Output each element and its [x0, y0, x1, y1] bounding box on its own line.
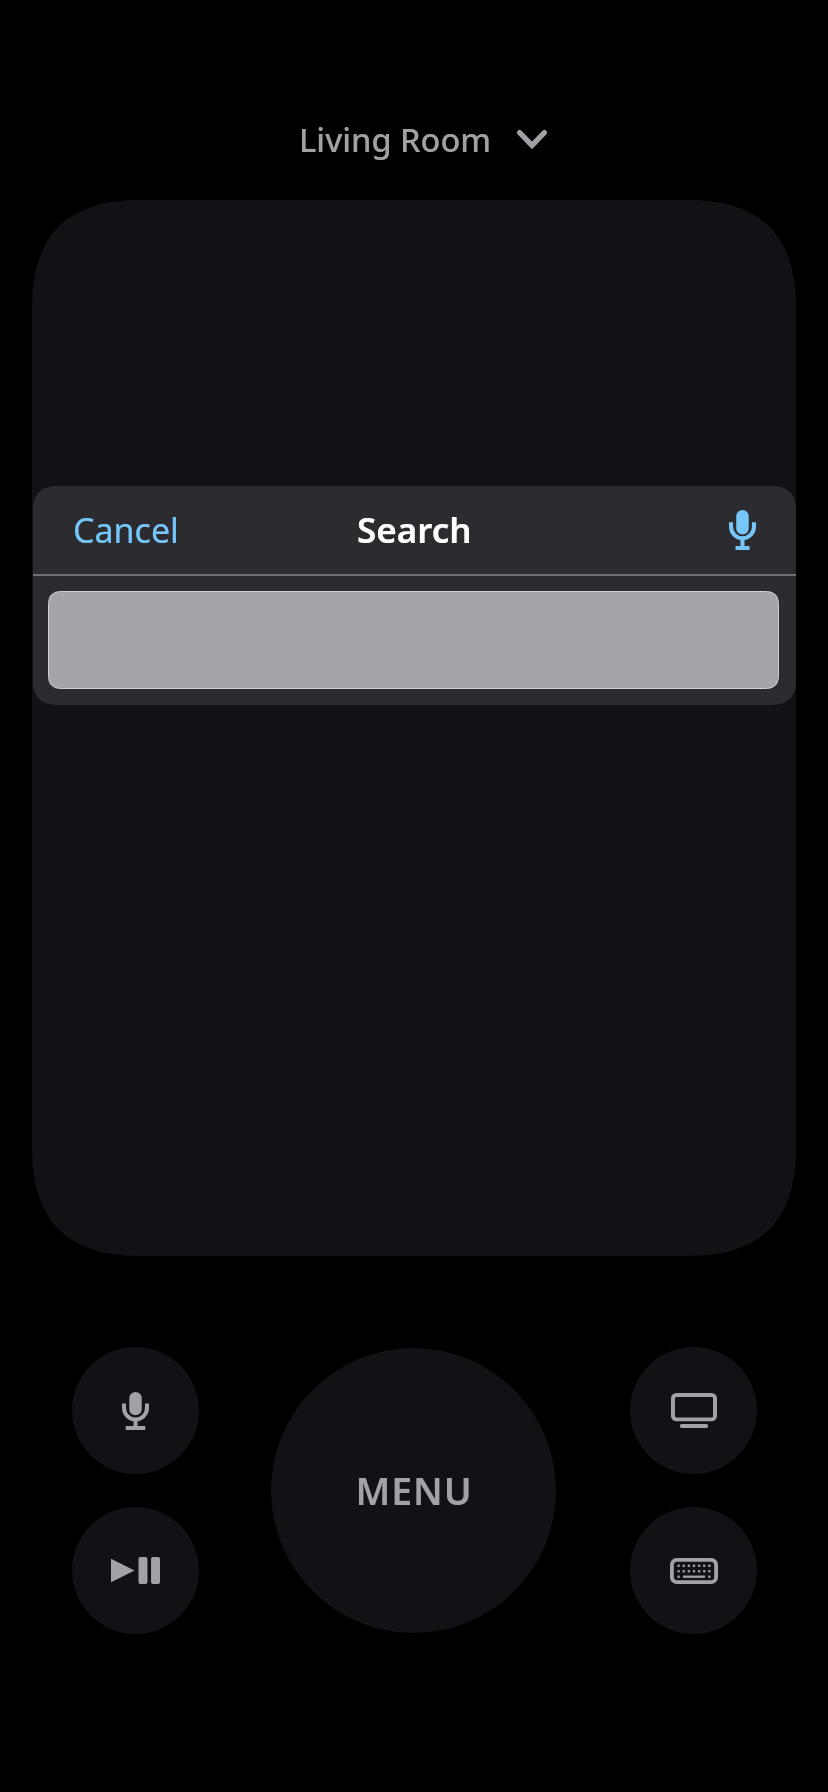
button[interactable]: TV: [630, 1347, 757, 1474]
button[interactable]: Touch surface: [32, 200, 796, 1256]
button[interactable]: Play or pause: [72, 1507, 199, 1634]
button[interactable]: Dictate search: [716, 504, 768, 556]
staticText: Living Room: [299, 117, 492, 161]
button[interactable]: Voice search: [72, 1347, 199, 1474]
staticText: Cancel: [73, 507, 179, 553]
staticText: MENU: [355, 1465, 473, 1516]
staticText: Search: [357, 506, 472, 554]
button[interactable]: Living Room: [294, 111, 552, 167]
button[interactable]: Keyboard: [630, 1507, 757, 1634]
button[interactable]: MENU: [271, 1348, 556, 1633]
button[interactable]: Search field: [49, 592, 778, 688]
button[interactable]: Cancel: [59, 497, 193, 563]
